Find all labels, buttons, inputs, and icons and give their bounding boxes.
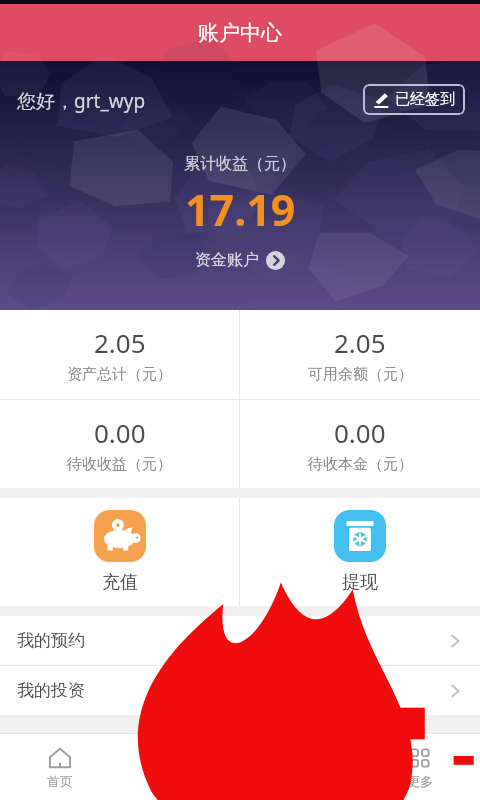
button[interactable]: 我的预约	[0, 616, 480, 665]
button[interactable]: 提现	[240, 498, 480, 606]
staticText: 资产总计（元）	[67, 365, 172, 384]
staticText: 充值	[102, 571, 138, 594]
staticText: 资金账户	[195, 250, 259, 270]
staticText: 累计收益（元）	[184, 154, 296, 174]
staticText: 待收收益（元）	[67, 455, 172, 474]
staticText: 0.00	[94, 415, 146, 450]
staticText: 待收本金（元）	[308, 455, 413, 474]
button[interactable]: 首页	[0, 734, 120, 800]
button[interactable]: 2.05	[240, 310, 480, 399]
button[interactable]: 2.05	[0, 310, 239, 399]
staticText: 0.00	[334, 415, 386, 450]
staticText: 您好，grt_wyp	[17, 88, 146, 114]
staticText: 可用余额（元）	[308, 365, 413, 384]
button[interactable]: 0.00	[240, 400, 480, 488]
staticText: 更多	[407, 773, 433, 789]
staticText: 我的投资	[17, 680, 85, 701]
staticText: 账户中心	[198, 20, 282, 46]
button[interactable]: 我的投资	[0, 666, 480, 715]
button[interactable]: 0.00	[0, 400, 239, 488]
staticText: 2.05	[94, 325, 146, 360]
staticText: 17.19	[185, 180, 296, 239]
staticText: 首页	[47, 773, 73, 789]
button[interactable]: 资金账户	[191, 247, 289, 273]
button[interactable]: 已经签到	[363, 84, 465, 115]
button[interactable]: 更多	[360, 734, 480, 800]
staticText: 2.05	[334, 325, 386, 360]
staticText: 提现	[342, 571, 378, 594]
button[interactable]: 项目列表	[120, 734, 240, 800]
staticText: 已经签到	[395, 90, 455, 109]
button[interactable]: 充值	[0, 498, 239, 606]
staticText: 我的预约	[17, 630, 85, 651]
